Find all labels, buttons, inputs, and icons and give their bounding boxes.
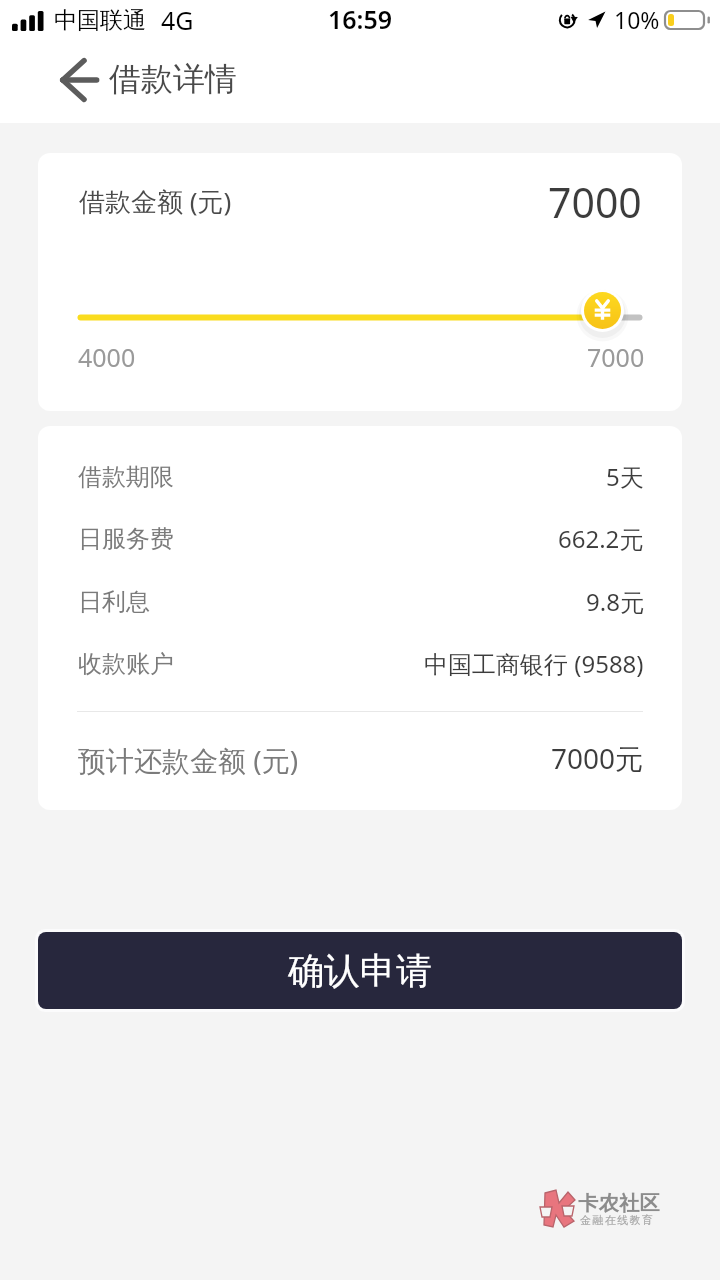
staticText: 确认申请 [288,948,432,993]
staticText: 7000 [548,174,642,230]
button[interactable]: 日服务费 [38,517,682,561]
button[interactable]: 收款账户 [38,642,682,686]
staticText: 借款详情 [109,59,237,99]
staticText: 中国联通 [54,6,146,35]
staticText: 日服务费 [78,524,174,554]
button[interactable]: 确认申请 [38,932,682,1009]
staticText: 4000 [78,340,136,374]
staticText: 日利息 [78,587,150,617]
button[interactable]: 借款期限 [38,455,682,499]
staticText: 9.8元 [586,585,644,618]
staticText: 借款期限 [78,462,174,492]
button[interactable]: 日利息 [38,580,682,624]
staticText: 16:59 [328,2,393,36]
staticText: 5天 [606,460,644,493]
staticText: 金融在线教育 [580,1213,655,1227]
staticText: 收款账户 [78,649,174,679]
staticText: 7000元 [551,739,644,777]
staticText: 7000 [587,340,645,374]
staticText: 卡农社区 [578,1191,660,1216]
staticText: 借款金额 (元) [79,183,232,219]
staticText: 10% [614,4,660,35]
staticText: 预计还款金额 (元) [78,741,299,779]
button[interactable]: Back [49,50,115,110]
staticText: 662.2元 [558,522,644,555]
button[interactable]: 预计还款金额 (元) [38,734,682,778]
staticText: 4G [161,3,194,37]
staticText: 中国工商银行 (9588) [424,647,644,680]
